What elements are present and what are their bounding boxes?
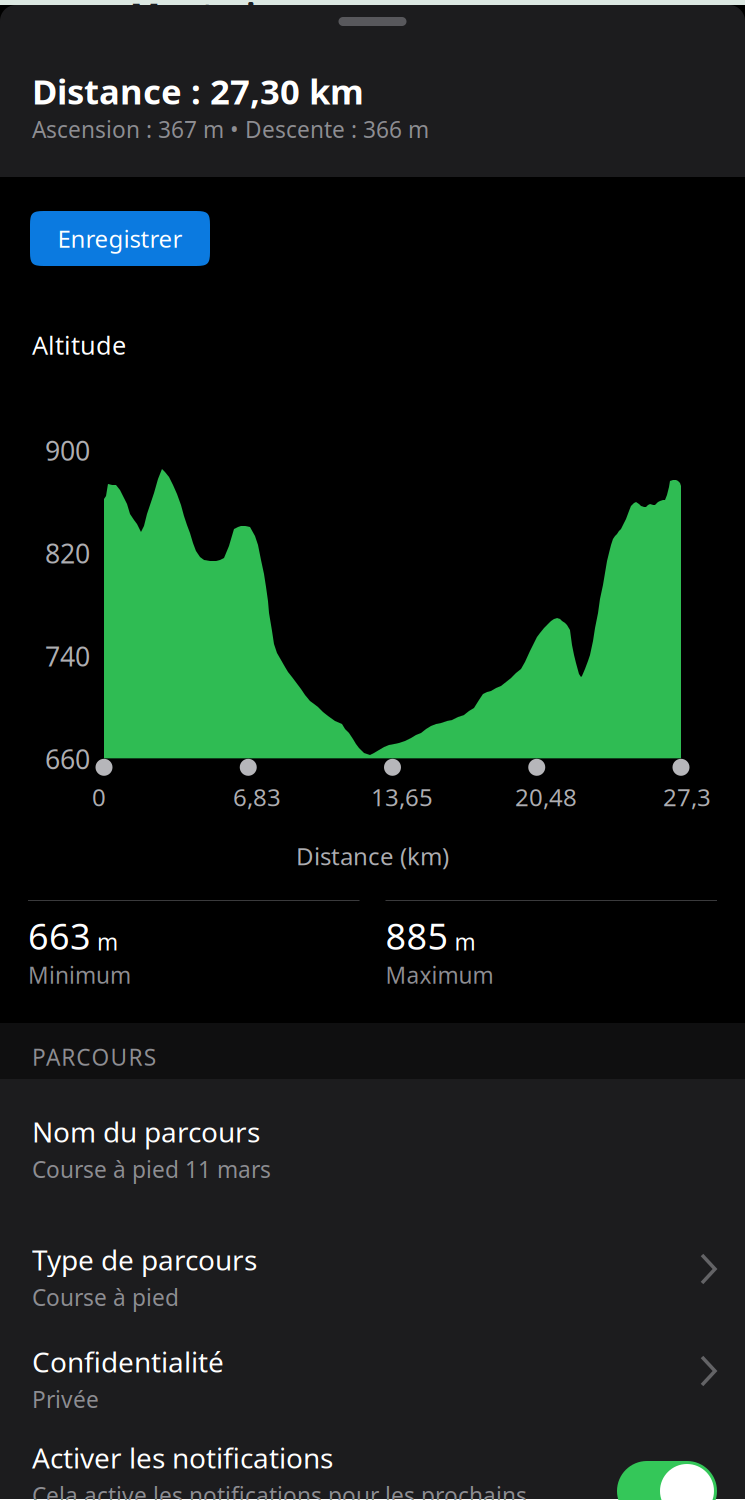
staticText: 885 (385, 912, 448, 960)
staticText: 663 (28, 912, 91, 960)
staticText: 660 (45, 741, 90, 777)
staticText: Maximum (385, 960, 493, 990)
staticText: 0 (92, 781, 106, 813)
button[interactable]: Activer les notifications (617, 1439, 717, 1500)
staticText: Course à pied (32, 1282, 179, 1312)
button[interactable]: Enregistrer (30, 211, 210, 266)
staticText: Nom du parcours (32, 1113, 260, 1150)
staticText: Minimum (28, 960, 131, 990)
staticText: 740 (45, 638, 90, 674)
staticText: Distance (km) (296, 840, 449, 872)
staticText: m (97, 927, 118, 957)
staticText: Distance : 27,30 km (32, 68, 364, 114)
button[interactable]: Nom du parcours (0, 1079, 745, 1207)
staticText: PARCOURS (32, 1042, 156, 1072)
button[interactable]: Confidentialité (0, 1309, 745, 1405)
staticText: 6,83 (233, 781, 281, 813)
staticText: m (454, 927, 475, 957)
staticText: Altitude (32, 328, 126, 362)
staticText: 13,65 (371, 781, 433, 813)
staticText: 27,3 (663, 781, 711, 813)
staticText: Ascension : 367 m • Descente : 366 m (32, 114, 429, 144)
button[interactable]: Type de parcours (0, 1207, 745, 1309)
staticText: Confidentialité (32, 1343, 224, 1380)
staticText: 820 (45, 536, 90, 571)
staticText: Cela active les notifications pour les p… (32, 1480, 527, 1500)
staticText: Enregistrer (57, 223, 182, 254)
staticText: Montmin (130, 0, 277, 35)
staticText: Activer les notifications (32, 1439, 333, 1476)
staticText: Type de parcours (32, 1241, 257, 1278)
staticText: 900 (45, 433, 90, 468)
staticText: Course à pied 11 mars (32, 1154, 271, 1184)
staticText: 20,48 (515, 781, 577, 813)
staticText: Privée (32, 1384, 99, 1414)
